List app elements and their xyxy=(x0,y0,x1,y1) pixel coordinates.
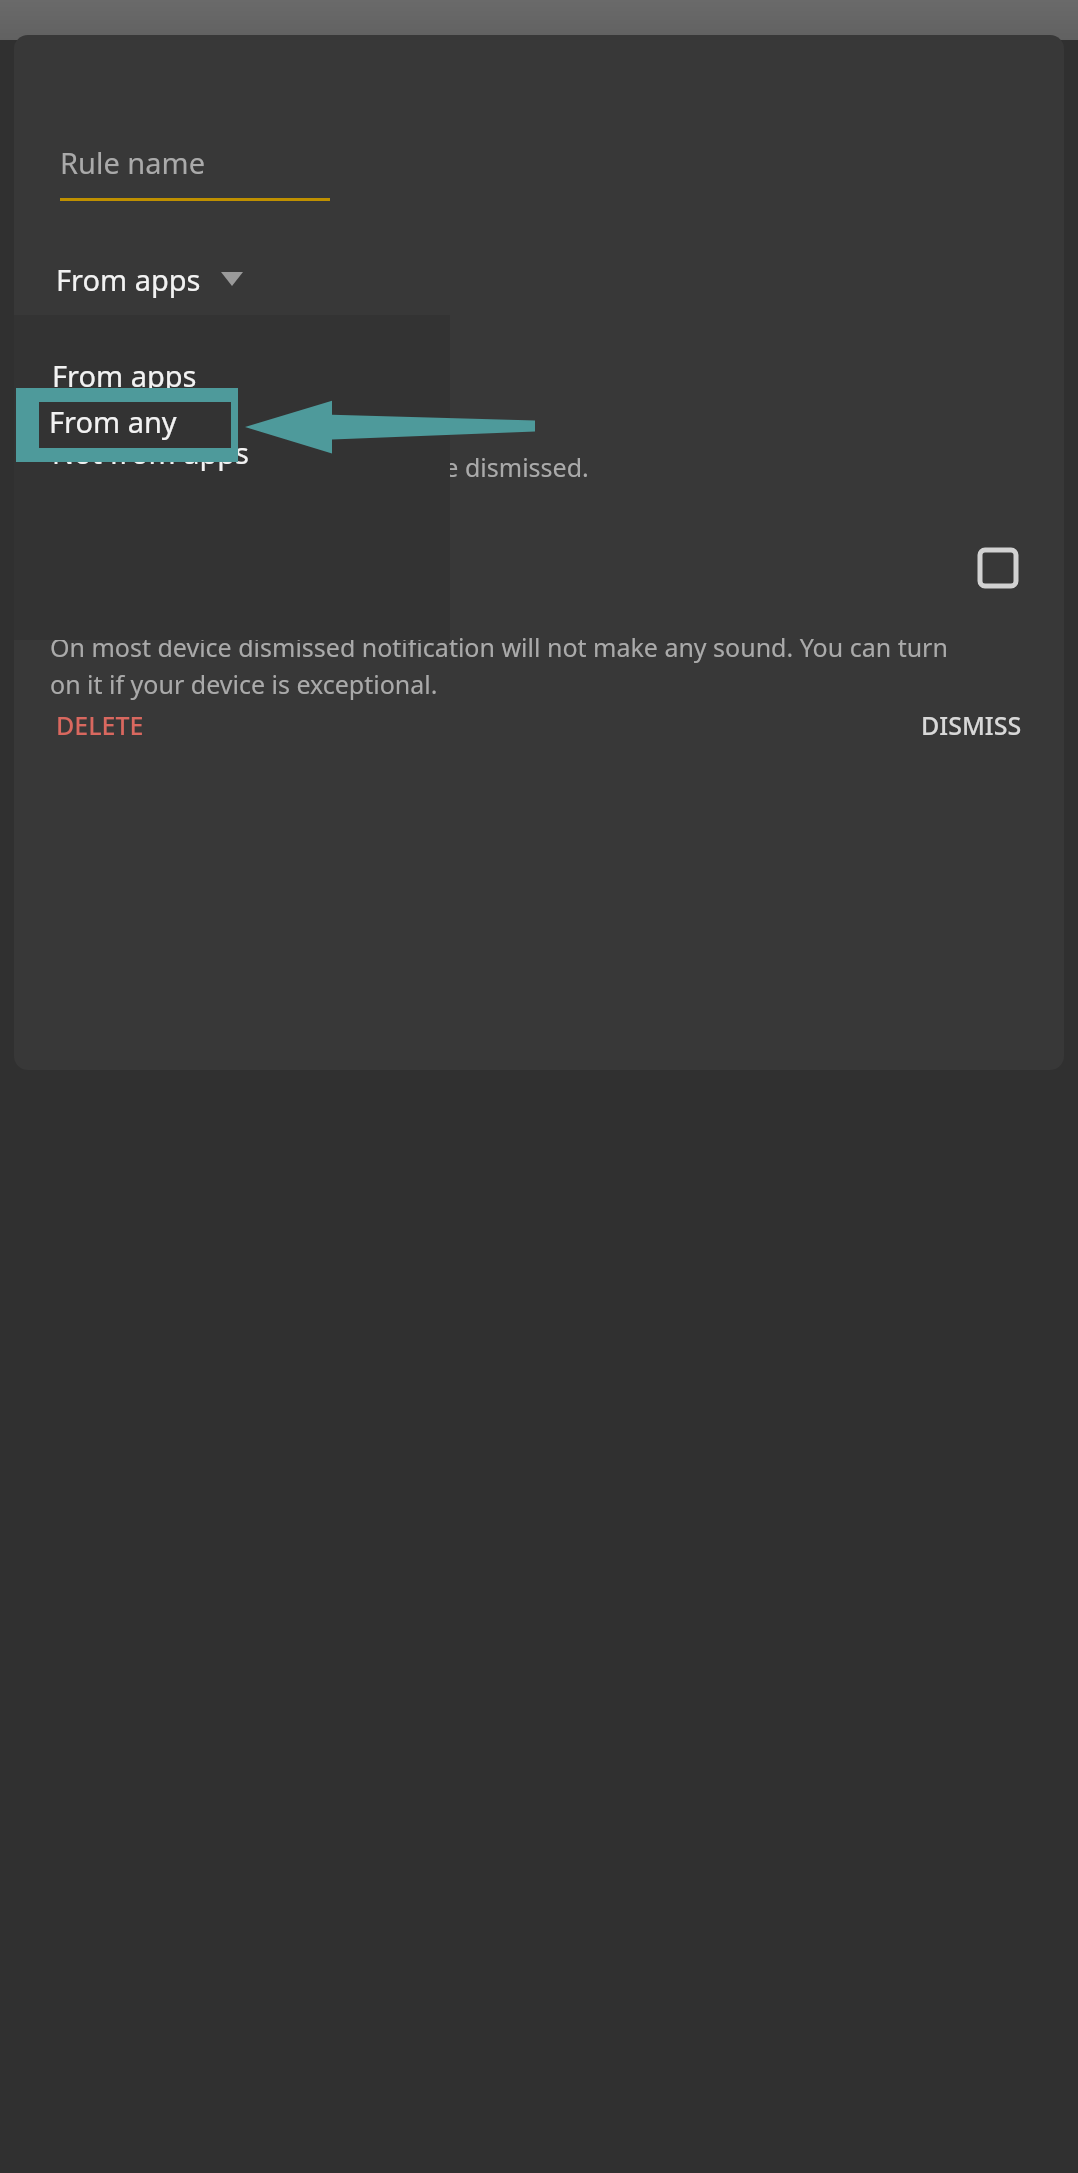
button[interactable]: From apps xyxy=(52,253,247,305)
staticText: From apps xyxy=(56,260,201,299)
button[interactable]: Not from apps xyxy=(14,414,450,491)
button[interactable]: DELETE xyxy=(40,696,160,754)
button[interactable]: Force mute while dismissing xyxy=(14,528,1064,608)
staticText: From any apps xyxy=(49,402,231,448)
button[interactable]: From any apps xyxy=(16,388,238,462)
staticText: DELETE xyxy=(56,708,144,742)
staticText: Rule name xyxy=(60,143,206,182)
button[interactable]: Rule name xyxy=(60,143,330,201)
other: Pointer arrow xyxy=(245,398,535,454)
staticText: On most device dismissed notification wi… xyxy=(50,630,978,701)
staticText: From apps xyxy=(52,356,197,395)
button[interactable]: From apps xyxy=(14,337,450,414)
other: Force mute while dismissing checkbox xyxy=(974,544,1022,592)
staticText: Notifications match the rule will be dis… xyxy=(50,450,589,484)
staticText: DISMISS xyxy=(921,708,1022,742)
button[interactable]: DISMISS xyxy=(905,696,1038,754)
staticText: Not from apps xyxy=(52,433,249,472)
